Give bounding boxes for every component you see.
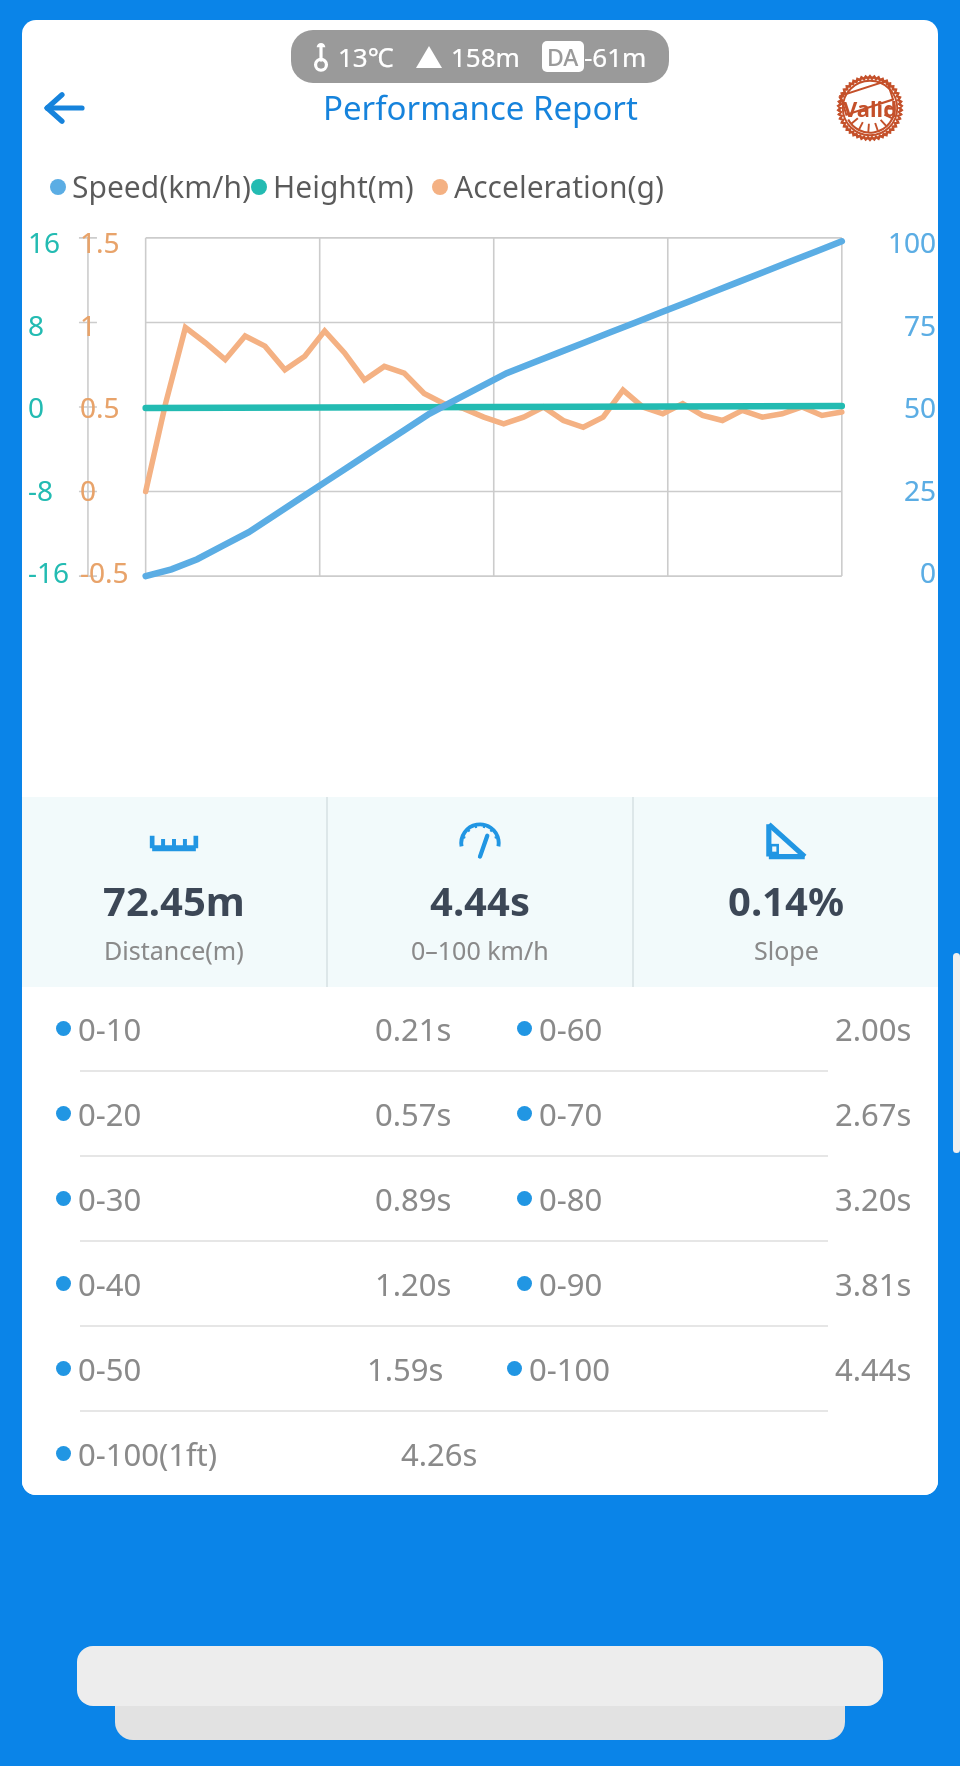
staticText: 100 [864, 223, 936, 261]
staticText: 2.67s [835, 1093, 912, 1135]
staticText: Speed(km/h) [72, 166, 251, 207]
staticText: Valid [843, 93, 898, 123]
staticText: 3.20s [835, 1178, 912, 1220]
button[interactable]: 0-40 [22, 1242, 938, 1325]
staticText: 0-40 [78, 1263, 142, 1305]
staticText: 0 [80, 471, 140, 509]
staticText: 1.5 [80, 223, 140, 261]
staticText: 0-80 [539, 1178, 603, 1220]
staticText: 2.00s [835, 1008, 912, 1050]
staticText: 72.45m [103, 873, 245, 927]
staticText: 0-90 [539, 1263, 603, 1305]
staticText: 4.26s [401, 1433, 478, 1475]
staticText: Performance Report [323, 85, 638, 130]
staticText: -61m [584, 39, 647, 74]
staticText: 0-60 [539, 1008, 603, 1050]
staticText: 0-50 [78, 1348, 142, 1390]
staticText: 0.5 [80, 388, 140, 426]
button[interactable]: Valid stamp [816, 72, 924, 144]
staticText: 0-10 [78, 1008, 142, 1050]
staticText: 0 [28, 388, 80, 426]
staticText: Height(m) [273, 166, 414, 207]
button[interactable]: 0-50 [22, 1327, 938, 1410]
staticText: 4.44s [430, 873, 530, 927]
staticText: Acceleration(g) [454, 166, 664, 207]
staticText: Distance(m) [104, 933, 244, 967]
staticText: DA [547, 41, 579, 72]
staticText: 75 [864, 306, 936, 344]
button[interactable]: Back [32, 76, 96, 140]
button[interactable]: 72.45m [22, 797, 326, 987]
button[interactable]: 0-20 [22, 1072, 938, 1155]
button[interactable]: 0-10 [22, 987, 938, 1070]
staticText: 0–100 km/h [411, 933, 549, 967]
staticText: 1.20s [375, 1263, 452, 1305]
staticText: 0-100(1ft) [78, 1433, 218, 1475]
staticText: -16 [28, 553, 80, 591]
staticText: Slope [754, 933, 819, 967]
staticText: 158m [451, 39, 520, 74]
staticText: 4.44s [835, 1348, 912, 1390]
button[interactable]: 4.44s [328, 797, 632, 987]
staticText: -8 [28, 471, 80, 509]
staticText: 0.21s [375, 1008, 452, 1050]
staticText: 0-100 [529, 1348, 610, 1390]
staticText: 1 [80, 306, 140, 344]
staticText: 1.59s [367, 1348, 444, 1390]
staticText: 0-30 [78, 1178, 142, 1220]
button[interactable]: 0-100(1ft) [22, 1412, 938, 1495]
staticText: 0-20 [78, 1093, 142, 1135]
staticText: 8 [28, 306, 80, 344]
staticText: 0.89s [375, 1178, 452, 1220]
staticText: 0.14% [728, 873, 844, 927]
staticText: 13℃ [338, 39, 394, 74]
staticText: 0 [864, 553, 936, 591]
staticText: 3.81s [835, 1263, 912, 1305]
staticText: 16 [28, 223, 80, 261]
staticText: 25 [864, 471, 936, 509]
staticText: 0-70 [539, 1093, 603, 1135]
button[interactable]: 0.14% [634, 797, 938, 987]
staticText: 50 [864, 388, 936, 426]
staticText: 0.57s [375, 1093, 452, 1135]
button[interactable]: 0-30 [22, 1157, 938, 1240]
staticText: -0.5 [80, 553, 140, 591]
